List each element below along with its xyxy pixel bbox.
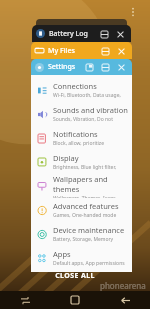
button[interactable]: Close xyxy=(116,62,126,72)
staticText: Wallpapers, Themes, Icons xyxy=(53,195,116,198)
staticText: Display xyxy=(53,153,79,163)
button[interactable]: Recents xyxy=(0,291,50,309)
staticText: Device maintenance xyxy=(53,225,125,235)
button[interactable]: Open in split screen view xyxy=(100,46,110,56)
staticText: Sounds and vibration xyxy=(53,105,128,115)
staticText: Sounds, Vibration, Do not disturb xyxy=(53,116,128,123)
staticText: CLOSE ALL xyxy=(55,271,95,281)
staticText: Battery Log xyxy=(49,29,88,39)
button[interactable]: CLOSE ALL xyxy=(0,267,150,285)
button[interactable]: Open in split screen view xyxy=(100,62,110,72)
staticText: Notifications xyxy=(53,129,98,139)
staticText: Wallpapers and themes xyxy=(53,174,128,194)
button[interactable]: Device maintenance xyxy=(31,222,132,246)
staticText: Apps xyxy=(53,249,71,259)
staticText: My Files xyxy=(48,46,75,56)
staticText: Games, One-handed mode xyxy=(53,212,117,219)
button[interactable]: Open in split screen view xyxy=(99,29,109,39)
button[interactable]: Open in pop-up view xyxy=(84,62,94,72)
button[interactable]: More options xyxy=(122,1,144,23)
staticText: Battery, Storage, Memory xyxy=(53,236,114,243)
button[interactable]: Wallpapers and themes xyxy=(31,174,132,198)
staticText: Settings xyxy=(48,62,76,72)
staticText: phonearena xyxy=(100,280,146,291)
button[interactable]: My Files xyxy=(31,42,132,59)
button[interactable]: Home xyxy=(50,291,100,309)
staticText: Wi-Fi, Bluetooth, Data usage, Airplane m… xyxy=(53,92,128,99)
button[interactable]: Apps xyxy=(31,246,132,270)
button[interactable]: Close xyxy=(116,46,126,56)
button[interactable]: Battery Log xyxy=(32,25,131,42)
button[interactable]: Back xyxy=(100,291,150,309)
button[interactable]: Connections xyxy=(31,78,132,102)
button[interactable]: Close xyxy=(115,29,125,39)
staticText: Connections xyxy=(53,81,97,91)
staticText: Brightness, Blue light filter, Home scre… xyxy=(53,164,128,171)
button[interactable]: Settings xyxy=(31,59,132,75)
button[interactable]: Notifications xyxy=(31,126,132,150)
staticText: Default apps, App permissions xyxy=(53,260,125,267)
button[interactable]: Display xyxy=(31,150,132,174)
staticText: Advanced features xyxy=(53,201,119,211)
staticText: Block, allow, prioritize xyxy=(53,140,105,147)
button[interactable]: Sounds and vibration xyxy=(31,102,132,126)
button[interactable]: Advanced features xyxy=(31,198,132,222)
